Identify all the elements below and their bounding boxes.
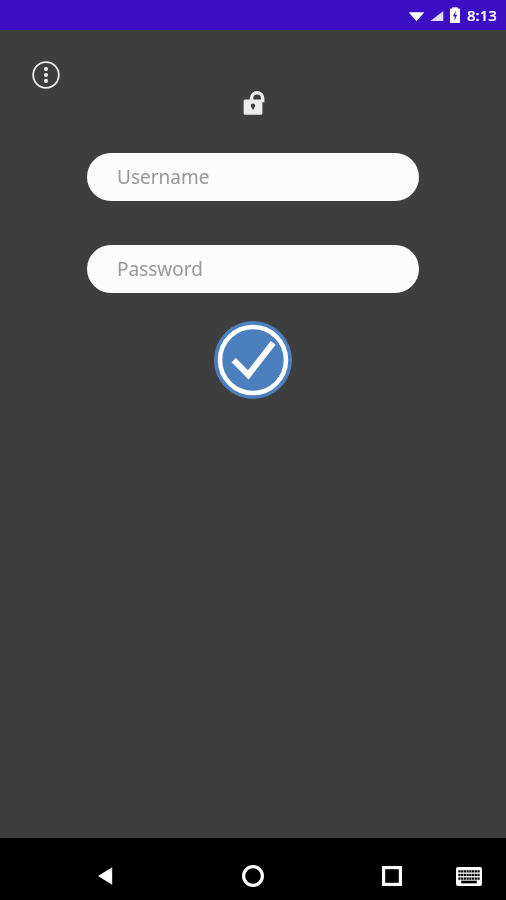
- button[interactable]: Home: [233, 856, 273, 896]
- button[interactable]: Unlock: [232, 80, 274, 122]
- button[interactable]: Recent apps: [372, 856, 412, 896]
- button[interactable]: Password: [87, 245, 419, 293]
- button[interactable]: More options: [28, 57, 64, 93]
- button[interactable]: Username: [87, 153, 419, 201]
- staticText: Password: [117, 256, 203, 282]
- staticText: 8:13: [467, 5, 497, 25]
- button[interactable]: Change keyboard: [451, 858, 487, 894]
- staticText: Username: [117, 164, 210, 190]
- button[interactable]: Back: [86, 856, 126, 896]
- button[interactable]: Submit: [213, 320, 293, 400]
